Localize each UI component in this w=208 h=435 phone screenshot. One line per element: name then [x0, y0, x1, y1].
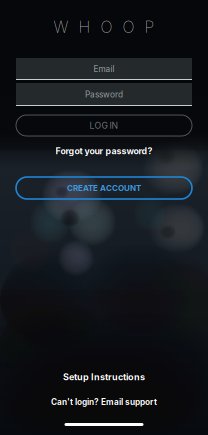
staticText: Can't login? Email support	[51, 397, 157, 407]
button[interactable]: CREATE ACCOUNT	[16, 177, 192, 199]
staticText: CREATE ACCOUNT	[67, 183, 141, 193]
button[interactable]: Setup Instructions	[44, 370, 164, 384]
staticText: LOG IN	[89, 120, 118, 131]
button[interactable]: Can't login? Email support	[29, 395, 179, 409]
staticText: Setup Instructions	[63, 371, 145, 382]
staticText: Password	[85, 89, 123, 99]
staticText: Email	[93, 64, 114, 74]
staticText: W H O O P	[53, 17, 154, 37]
button[interactable]: LOG IN	[16, 115, 192, 136]
staticText: Forgot your password?	[55, 146, 152, 156]
button[interactable]: Forgot your password?	[34, 144, 174, 158]
